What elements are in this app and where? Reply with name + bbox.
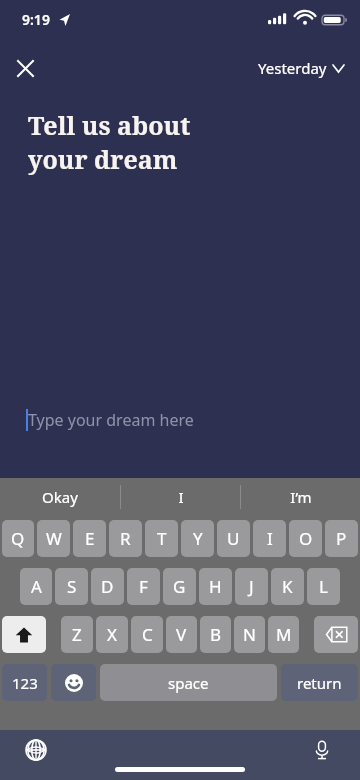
button[interactable]: M: [268, 616, 299, 653]
staticText: N: [243, 623, 256, 646]
staticText: I’m: [290, 487, 312, 507]
button[interactable]: Voice input: [306, 734, 338, 766]
staticText: your dream: [28, 142, 178, 176]
staticText: M: [276, 623, 292, 646]
button[interactable]: H: [199, 568, 232, 605]
staticText: V: [176, 623, 187, 646]
staticText: space: [168, 673, 209, 693]
staticText: W: [46, 527, 62, 550]
staticText: X: [107, 623, 117, 646]
button[interactable]: Z: [61, 616, 93, 653]
staticText: J: [249, 575, 254, 598]
staticText: Tell us about: [28, 108, 191, 142]
staticText: S: [67, 575, 77, 598]
staticText: U: [227, 527, 240, 550]
button[interactable]: S: [55, 568, 88, 605]
button[interactable]: D: [91, 568, 124, 605]
staticText: return: [297, 673, 342, 693]
staticText: O: [299, 527, 313, 550]
button[interactable]: V: [166, 616, 197, 653]
button[interactable]: X: [96, 616, 128, 653]
button[interactable]: L: [307, 568, 340, 605]
button[interactable]: Backspace: [314, 616, 358, 653]
staticText: Z: [72, 623, 82, 646]
button[interactable]: K: [271, 568, 304, 605]
button[interactable]: Q: [2, 520, 34, 557]
staticText: A: [31, 575, 42, 598]
button[interactable]: W: [37, 520, 70, 557]
button[interactable]: Type your dream here: [0, 405, 360, 435]
staticText: R: [120, 527, 131, 550]
button[interactable]: I: [253, 520, 286, 557]
button[interactable]: J: [235, 568, 268, 605]
button[interactable]: space: [100, 664, 277, 701]
staticText: P: [336, 527, 347, 550]
staticText: D: [101, 575, 114, 598]
button[interactable]: P: [325, 520, 358, 557]
staticText: L: [319, 575, 328, 598]
button[interactable]: I: [121, 478, 240, 516]
staticText: Q: [11, 527, 25, 550]
staticText: I: [267, 527, 273, 550]
button[interactable]: R: [109, 520, 142, 557]
staticText: H: [209, 575, 222, 598]
button[interactable]: Yesterday: [254, 54, 348, 82]
button[interactable]: return: [281, 664, 358, 701]
staticText: E: [85, 527, 95, 550]
staticText: B: [210, 623, 222, 646]
staticText: 9:19: [22, 10, 50, 29]
staticText: F: [139, 575, 148, 598]
staticText: 123: [12, 673, 38, 693]
button[interactable]: O: [289, 520, 322, 557]
staticText: Y: [193, 527, 203, 550]
button[interactable]: Emoji: [51, 664, 96, 701]
button[interactable]: Okay: [0, 478, 120, 516]
button[interactable]: E: [73, 520, 106, 557]
button[interactable]: Shift: [2, 616, 46, 653]
staticText: Yesterday: [258, 58, 327, 78]
button[interactable]: G: [163, 568, 196, 605]
staticText: G: [173, 575, 186, 598]
button[interactable]: F: [127, 568, 160, 605]
button[interactable]: Close: [8, 51, 42, 85]
staticText: Okay: [42, 487, 78, 507]
staticText: C: [142, 623, 153, 646]
staticText: Type your dream here: [28, 409, 194, 431]
staticText: T: [157, 527, 167, 550]
button[interactable]: C: [131, 616, 163, 653]
button[interactable]: I’m: [241, 478, 360, 516]
button[interactable]: N: [234, 616, 265, 653]
button[interactable]: B: [200, 616, 231, 653]
button[interactable]: T: [145, 520, 178, 557]
button[interactable]: Y: [181, 520, 214, 557]
button[interactable]: Change keyboard language: [20, 734, 52, 766]
button[interactable]: 123: [2, 664, 47, 701]
button[interactable]: A: [20, 568, 52, 605]
button[interactable]: U: [217, 520, 250, 557]
staticText: I: [178, 487, 184, 507]
staticText: K: [282, 575, 293, 598]
